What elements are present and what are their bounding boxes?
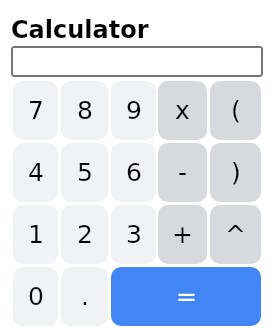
- button[interactable]: .: [61, 267, 108, 326]
- staticText: 2: [77, 220, 93, 249]
- button[interactable]: 2: [61, 205, 108, 264]
- staticText: 8: [77, 96, 93, 125]
- staticText: Calculator: [11, 16, 149, 44]
- button[interactable]: 3: [111, 205, 156, 264]
- staticText: +: [172, 220, 193, 249]
- staticText: 4: [28, 158, 44, 187]
- button[interactable]: x: [158, 81, 207, 140]
- staticText: 7: [28, 96, 44, 125]
- button[interactable]: ): [210, 143, 261, 202]
- staticText: .: [81, 282, 89, 311]
- button[interactable]: 7: [13, 81, 58, 140]
- button[interactable]: 4: [13, 143, 58, 202]
- button[interactable]: -: [158, 143, 207, 202]
- staticText: 6: [126, 158, 142, 187]
- staticText: ^: [225, 220, 246, 249]
- staticText: -: [178, 158, 188, 187]
- button[interactable]: 0: [13, 267, 58, 326]
- button[interactable]: 1: [13, 205, 58, 264]
- staticText: 5: [77, 158, 93, 187]
- staticText: ): [231, 158, 241, 187]
- button[interactable]: ^: [210, 205, 261, 264]
- staticText: (: [231, 96, 241, 125]
- button[interactable]: =: [111, 267, 261, 326]
- staticText: x: [175, 96, 190, 125]
- button[interactable]: (: [210, 81, 261, 140]
- button[interactable]: 8: [61, 81, 108, 140]
- button[interactable]: 5: [61, 143, 108, 202]
- button[interactable]: +: [158, 205, 207, 264]
- staticText: 0: [28, 282, 44, 311]
- staticText: 3: [126, 220, 142, 249]
- button[interactable]: 9: [111, 81, 156, 140]
- button[interactable]: 6: [111, 143, 156, 202]
- staticText: =: [176, 282, 197, 311]
- staticText: 1: [28, 220, 44, 249]
- staticText: 9: [126, 96, 142, 125]
- button[interactable]: [11, 46, 263, 77]
